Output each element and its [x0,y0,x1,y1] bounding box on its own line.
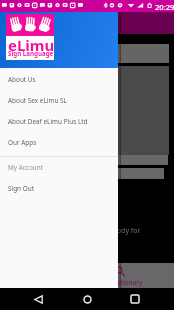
staticText: Sign Out [8,184,34,193]
staticText: 20:29 [155,2,174,12]
button[interactable]: About Sex eLimu SL [0,90,118,111]
staticText: About Deaf eLimu Plus Ltd [8,117,88,126]
staticText: Dictionary [111,278,143,287]
staticText: About Us [8,75,36,84]
button[interactable]: About Us [0,69,118,90]
staticText: The deaf community uses their body for [9,226,141,236]
staticText: About Sex eLimu SL [8,96,67,105]
button[interactable]: Sign Out [0,178,118,199]
button[interactable]: My Account [0,157,118,178]
button[interactable]: Recents [125,289,145,309]
button[interactable]: About Deaf eLimu Plus Ltd [0,111,118,132]
staticText: Our Apps [8,138,37,147]
staticText: eLimu [8,35,55,55]
staticText: My Account [8,163,44,172]
button[interactable]: Home [77,289,97,309]
button[interactable]: Back [28,289,48,309]
staticText: Sign Language [8,49,54,57]
button[interactable]: Our Apps [0,132,118,153]
